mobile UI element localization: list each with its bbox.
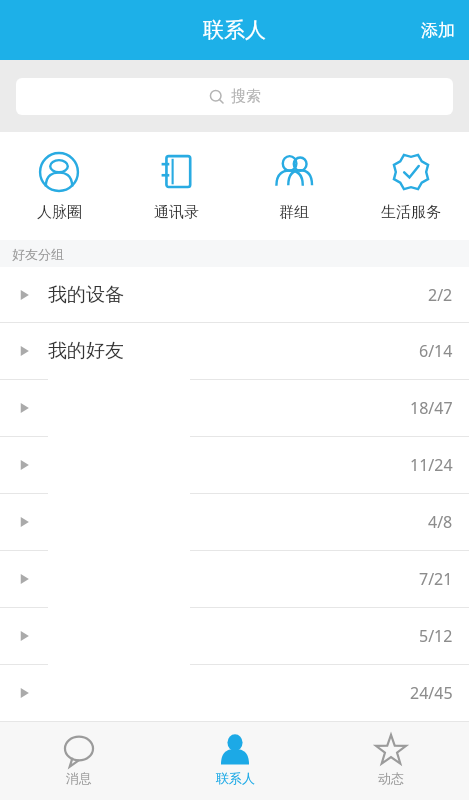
staticText: 人脉圈 — [37, 203, 82, 222]
button[interactable]: 消息 — [0, 722, 157, 786]
staticText: 消息 — [66, 770, 92, 786]
staticText: 2/2 — [428, 284, 453, 306]
button[interactable]: 5/12 — [0, 608, 469, 664]
button[interactable]: 11/24 — [0, 437, 469, 493]
staticText: 5/12 — [419, 625, 453, 647]
button[interactable]: 7/21 — [0, 551, 469, 607]
button[interactable]: 4/8 — [0, 494, 469, 550]
staticText: 联系人 — [216, 770, 255, 786]
staticText: 7/21 — [419, 568, 453, 590]
staticText: 添加 — [421, 20, 455, 41]
button[interactable]: 联系人 — [157, 722, 313, 786]
button[interactable]: 群组 — [235, 132, 352, 222]
staticText: 我的设备 — [48, 283, 428, 307]
staticText: 4/8 — [428, 511, 453, 533]
staticText: 通讯录 — [154, 203, 199, 222]
button[interactable]: 18/47 — [0, 380, 469, 436]
button[interactable]: 生活服务 — [352, 132, 469, 222]
staticText: 6/14 — [419, 340, 453, 362]
button[interactable]: 搜索 — [16, 78, 453, 115]
staticText: 搜索 — [231, 87, 261, 106]
button[interactable]: 通讯录 — [118, 132, 235, 222]
staticText: 联系人 — [203, 17, 266, 43]
button[interactable]: 人脉圈 — [0, 132, 118, 222]
staticText: 动态 — [378, 770, 404, 786]
staticText: 我的好友 — [48, 339, 419, 363]
button[interactable]: 我的设备 — [0, 267, 469, 322]
staticText: 好友分组 — [12, 246, 64, 262]
button[interactable]: 添加 — [407, 10, 469, 51]
staticText: 24/45 — [410, 682, 453, 704]
button[interactable]: 我的好友 — [0, 323, 469, 379]
button[interactable]: 动态 — [313, 722, 469, 786]
staticText: 群组 — [279, 203, 309, 222]
staticText: 18/47 — [410, 397, 453, 419]
staticText: 11/24 — [410, 454, 453, 476]
button[interactable]: 24/45 — [0, 665, 469, 721]
staticText: 生活服务 — [381, 203, 441, 222]
